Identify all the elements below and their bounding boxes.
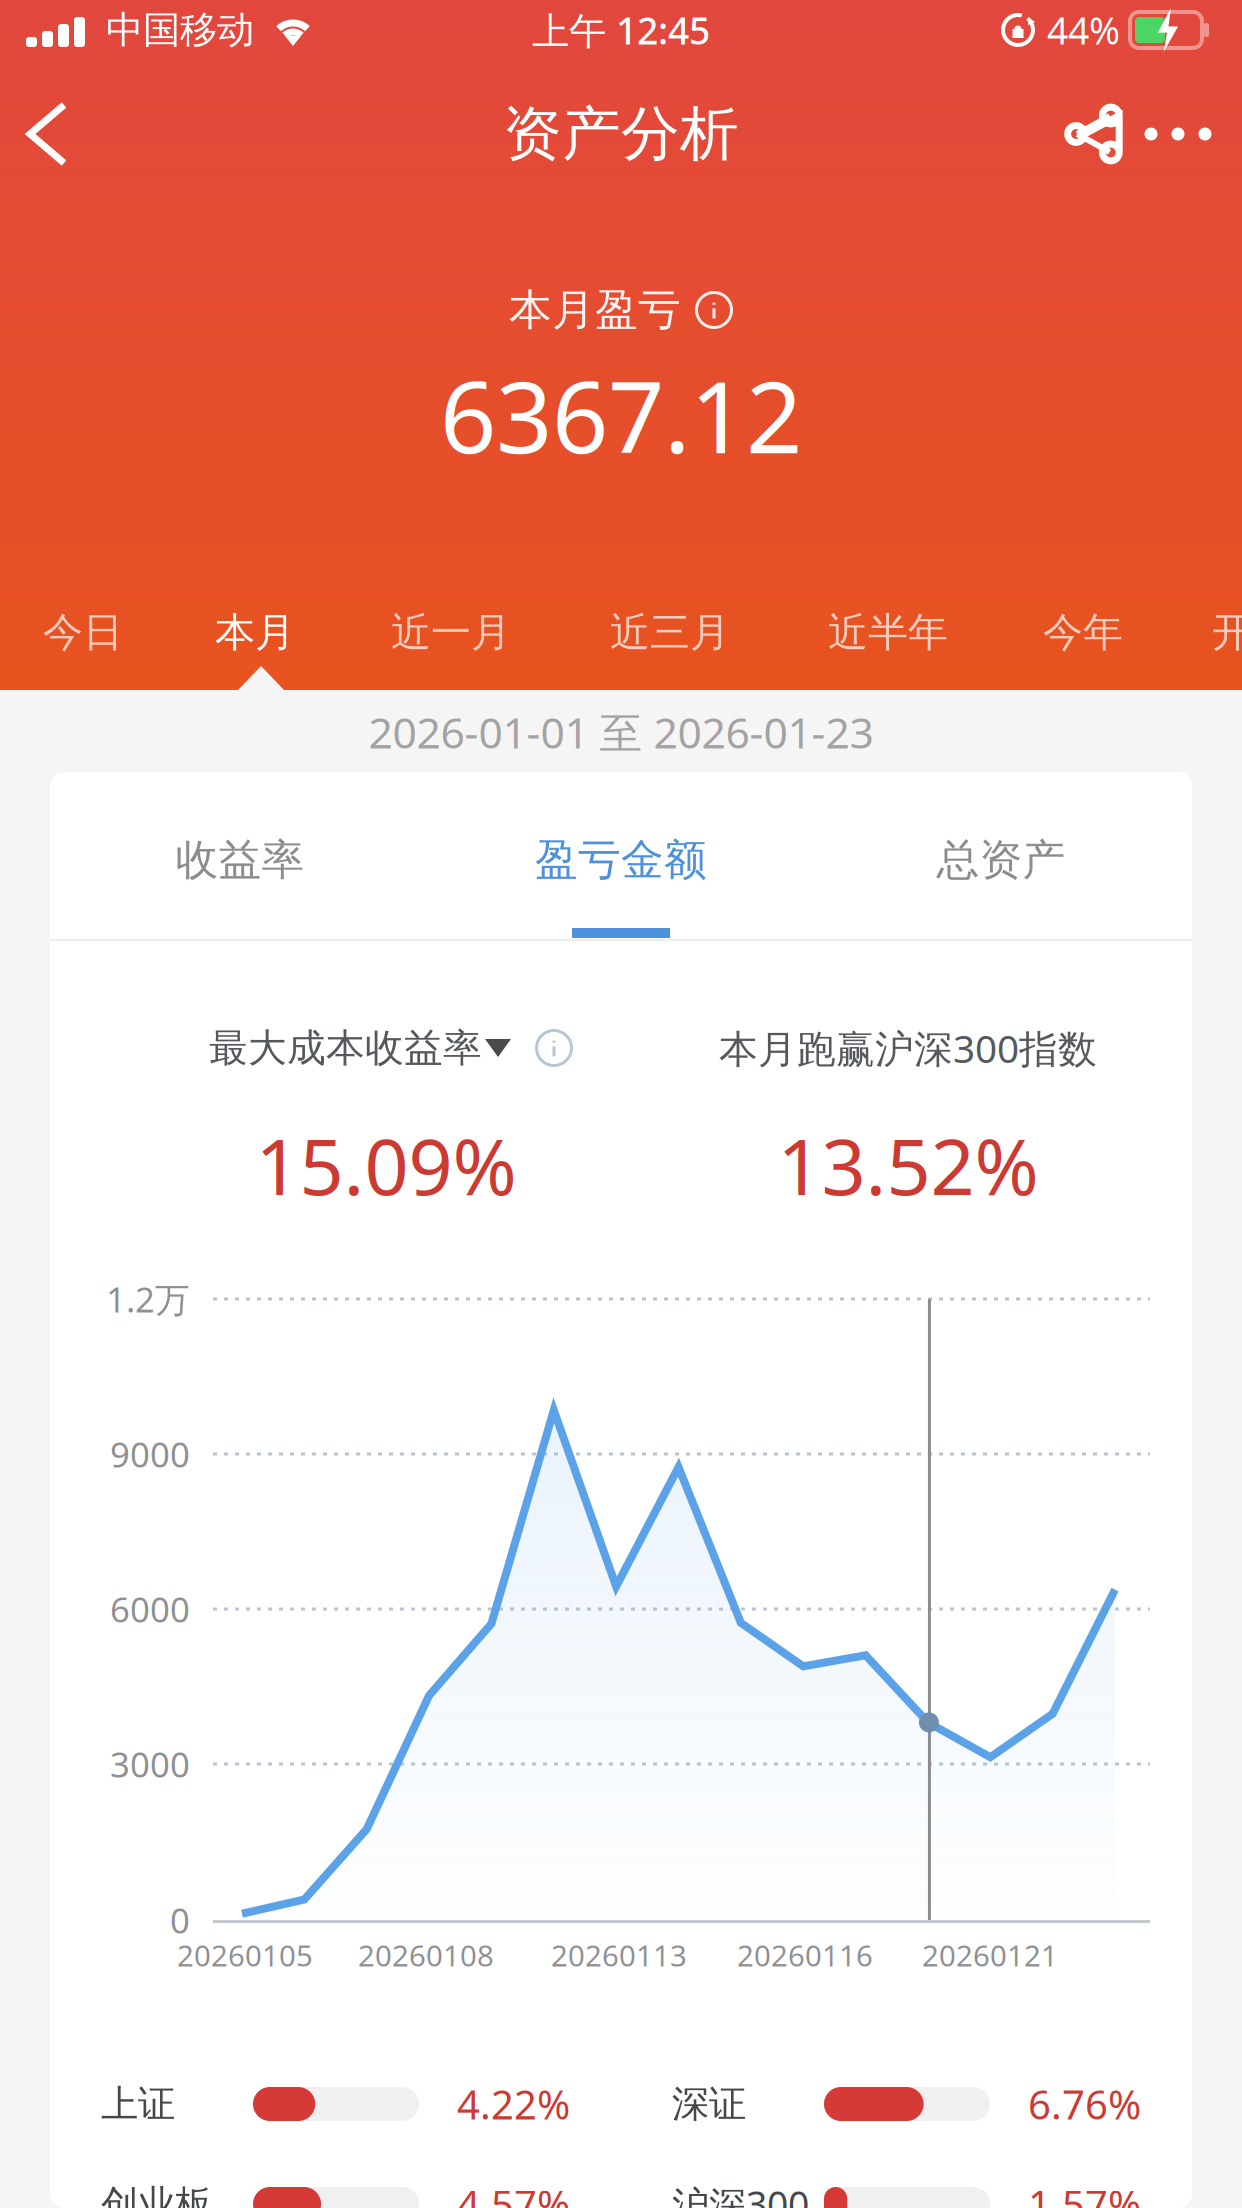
staticText: 近半年 (828, 608, 948, 657)
staticText: 本月 (215, 608, 295, 657)
button[interactable]: Share (1050, 88, 1138, 180)
staticText: 上证 (101, 2081, 175, 2127)
button[interactable]: 今年 (0, 580, 180, 685)
button[interactable]: Back (0, 85, 94, 183)
staticText: 今年 (1043, 608, 1123, 657)
staticText: 20260113 (551, 1935, 687, 1974)
staticText: 收益率 (175, 834, 304, 886)
staticText: 20260108 (358, 1935, 494, 1974)
staticText: 13.52% (777, 1114, 1038, 1216)
staticText: 近一月 (391, 608, 511, 657)
button[interactable]: 盈亏金额 (50, 772, 430, 939)
button[interactable]: More (1138, 88, 1242, 180)
staticText: 近三月 (610, 608, 730, 657)
staticText: 15.09% (255, 1114, 516, 1216)
staticText: 20260121 (922, 1935, 1058, 1974)
staticText: 总资产 (936, 834, 1065, 886)
staticText: 中国移动 (106, 7, 254, 53)
button[interactable]: 总资产 (50, 772, 430, 939)
staticText: 开 (1212, 608, 1242, 657)
button[interactable]: 收益率 (50, 772, 430, 939)
button[interactable]: 近三月 (0, 580, 180, 685)
staticText: 盈亏金额 (535, 834, 707, 886)
staticText: 本月跑赢沪深300指数 (719, 1022, 1097, 1074)
button[interactable]: 近一月 (0, 580, 180, 685)
staticText: 创业板 (101, 2181, 212, 2208)
button[interactable]: 开 (0, 580, 180, 685)
staticText: 6000 (110, 1586, 190, 1632)
staticText: 20260105 (177, 1935, 313, 1974)
staticText: 上午 12:45 (532, 5, 710, 55)
staticText: 1.2万 (106, 1276, 190, 1322)
staticText: 沪深300 (672, 2179, 809, 2208)
staticText: 20260116 (737, 1935, 873, 1974)
button[interactable]: 今日 (0, 580, 180, 685)
staticText: 深证 (672, 2081, 746, 2127)
staticText: 今日 (43, 608, 123, 657)
staticText: 4.57% (457, 2177, 570, 2208)
staticText: 资产分析 (503, 98, 739, 170)
staticText: 0 (170, 1897, 190, 1943)
staticText: 本月盈亏 (509, 284, 681, 336)
staticText: 44% (1047, 5, 1120, 55)
button[interactable]: 本月 (0, 580, 180, 685)
staticText: 6.76% (1028, 2077, 1141, 2130)
staticText: 9000 (110, 1431, 190, 1477)
staticText: 3000 (110, 1741, 190, 1787)
staticText: 4.22% (457, 2077, 570, 2130)
staticText: 6367.12 (440, 349, 802, 480)
staticText: 1.57% (1028, 2177, 1141, 2208)
button[interactable]: 近半年 (0, 580, 180, 685)
staticText: 2026-01-01 至 2026-01-23 (368, 704, 873, 760)
staticText: 最大成本收益率 (209, 1024, 482, 1072)
